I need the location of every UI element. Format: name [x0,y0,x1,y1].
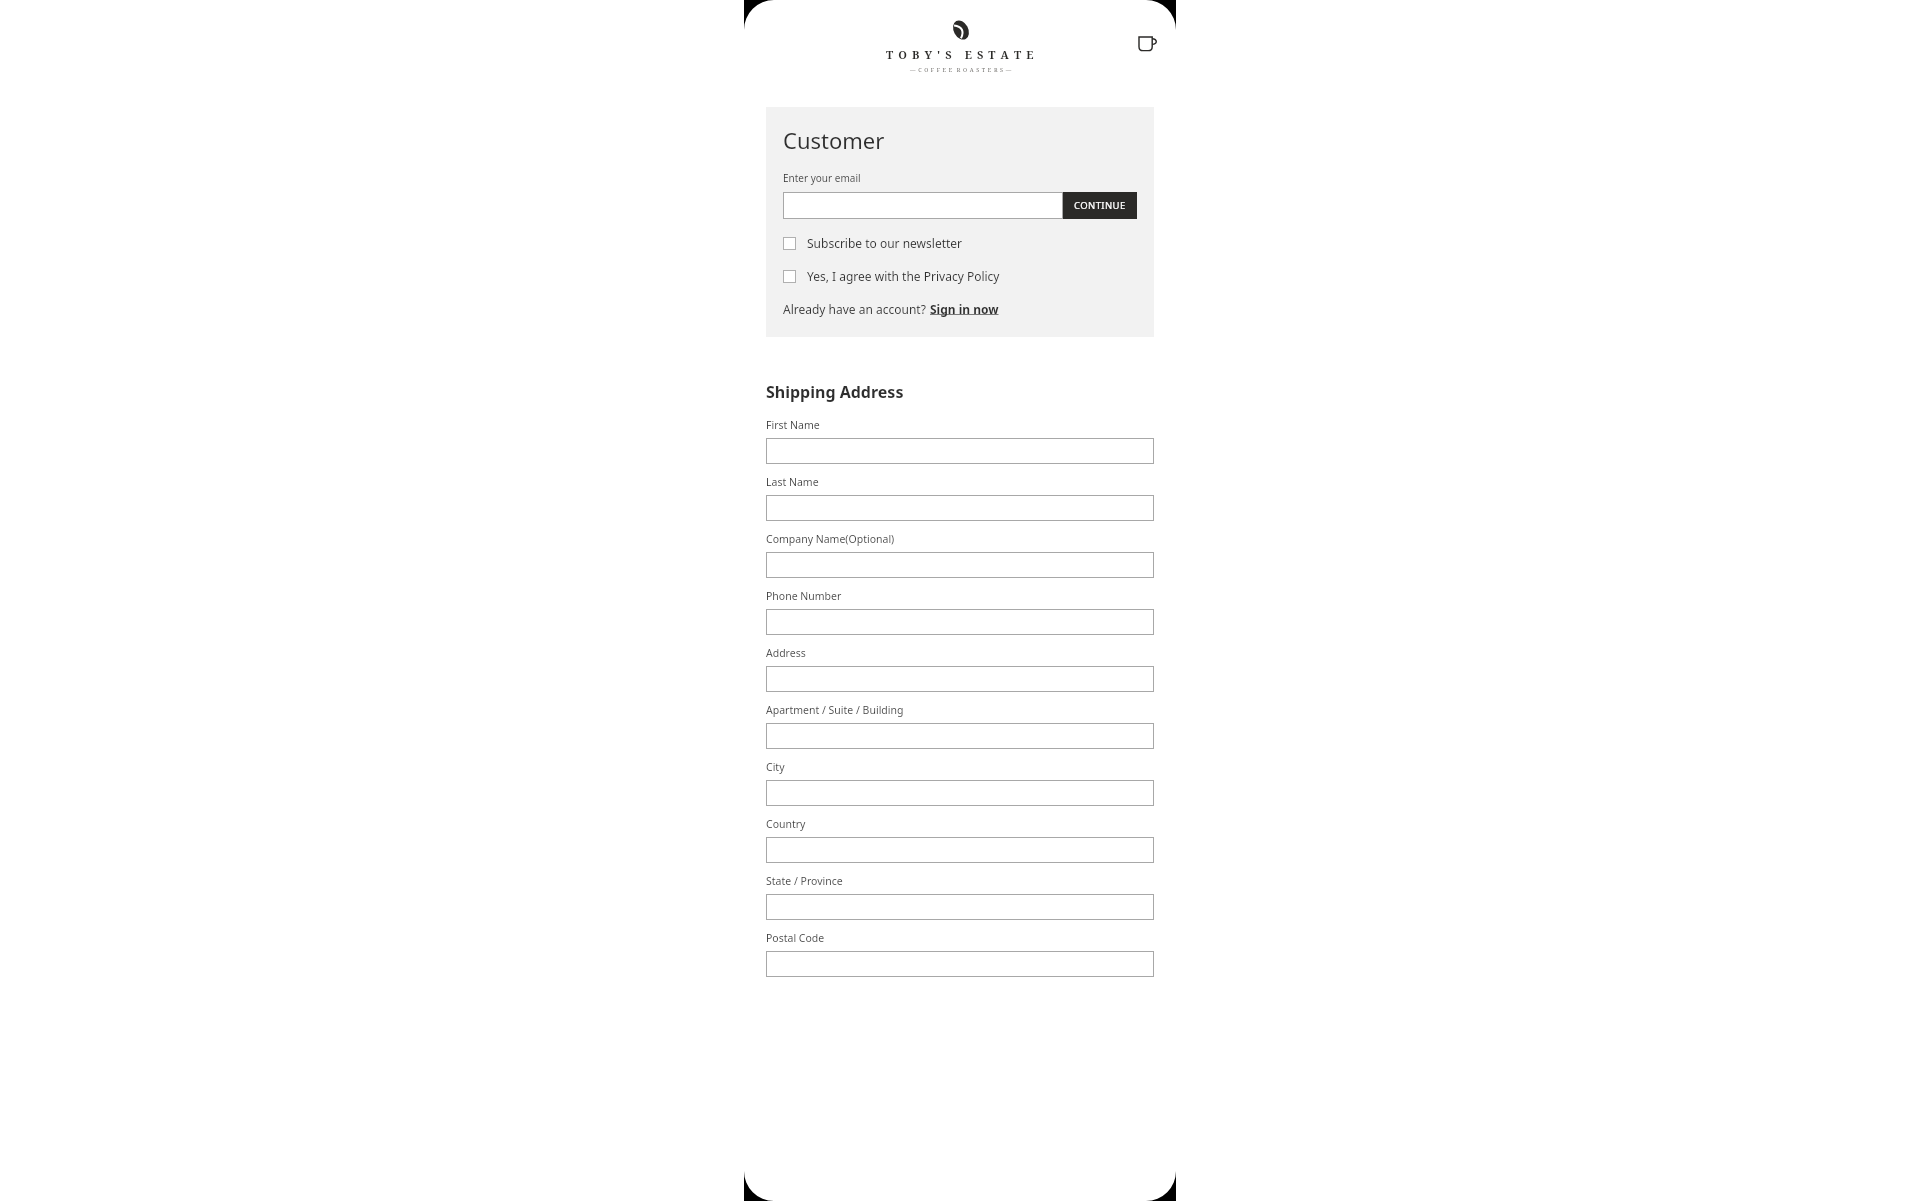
staticText: Subscribe to our newsletter [807,235,963,251]
button[interactable] [766,609,1154,635]
staticText: Customer [783,125,885,155]
staticText: — C O F F E E R O A S T E R S — [910,66,1012,73]
button[interactable] [766,951,1154,977]
button[interactable]: Subscribe to our newsletter [783,235,1137,251]
button[interactable]: Sign in now [930,301,999,317]
button[interactable] [766,552,1154,578]
staticText: Shipping Address [766,381,904,403]
button[interactable] [783,192,1063,219]
staticText: Country [766,817,806,831]
staticText: T O B Y ' S E S T A T E [886,47,1035,62]
button[interactable] [766,438,1154,464]
staticText: City [766,760,785,774]
staticText: Address [766,646,806,660]
button[interactable] [766,837,1154,863]
staticText: Company Name(Optional) [766,532,895,546]
staticText: State / Province [766,874,843,888]
button[interactable]: CONTINUE [1063,192,1137,219]
button[interactable]: Yes, I agree with the Privacy Policy [783,268,1137,284]
staticText: Postal Code [766,931,825,945]
staticText: CONTINUE [1074,199,1126,212]
staticText: First Name [766,418,820,432]
staticText: Last Name [766,475,819,489]
button[interactable]: Cart [1136,30,1162,56]
staticText: Phone Number [766,589,842,603]
button[interactable] [766,894,1154,920]
staticText: Apartment / Suite / Building [766,703,904,717]
button[interactable] [766,780,1154,806]
staticText: Yes, I agree with the Privacy Policy [807,268,1000,284]
staticText: Already have an account? [783,301,930,317]
button[interactable] [766,666,1154,692]
button[interactable] [766,723,1154,749]
staticText: Enter your email [783,171,861,185]
staticText: Sign in now [930,301,999,317]
button[interactable] [766,495,1154,521]
